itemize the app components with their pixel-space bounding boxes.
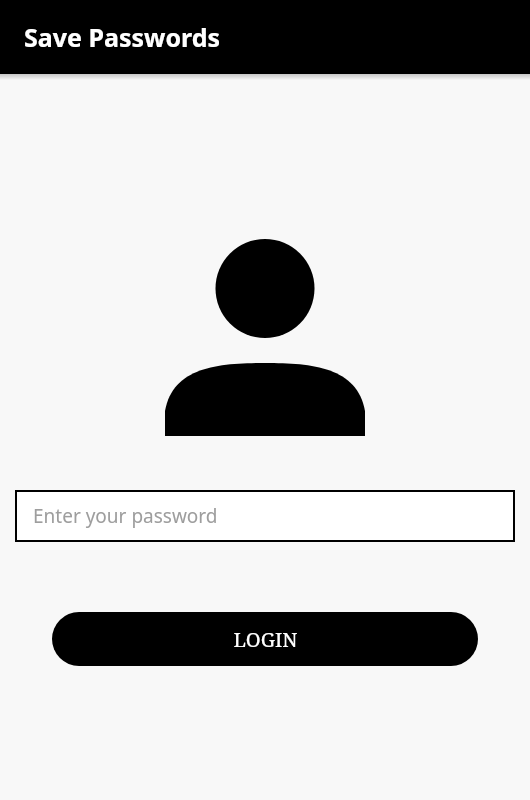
staticText: Save Passwords [24,20,221,54]
button[interactable]: LOGIN [52,612,478,666]
staticText: LOGIN [233,626,298,653]
button[interactable]: Enter your password [15,490,515,542]
staticText: Enter your password [33,503,218,529]
